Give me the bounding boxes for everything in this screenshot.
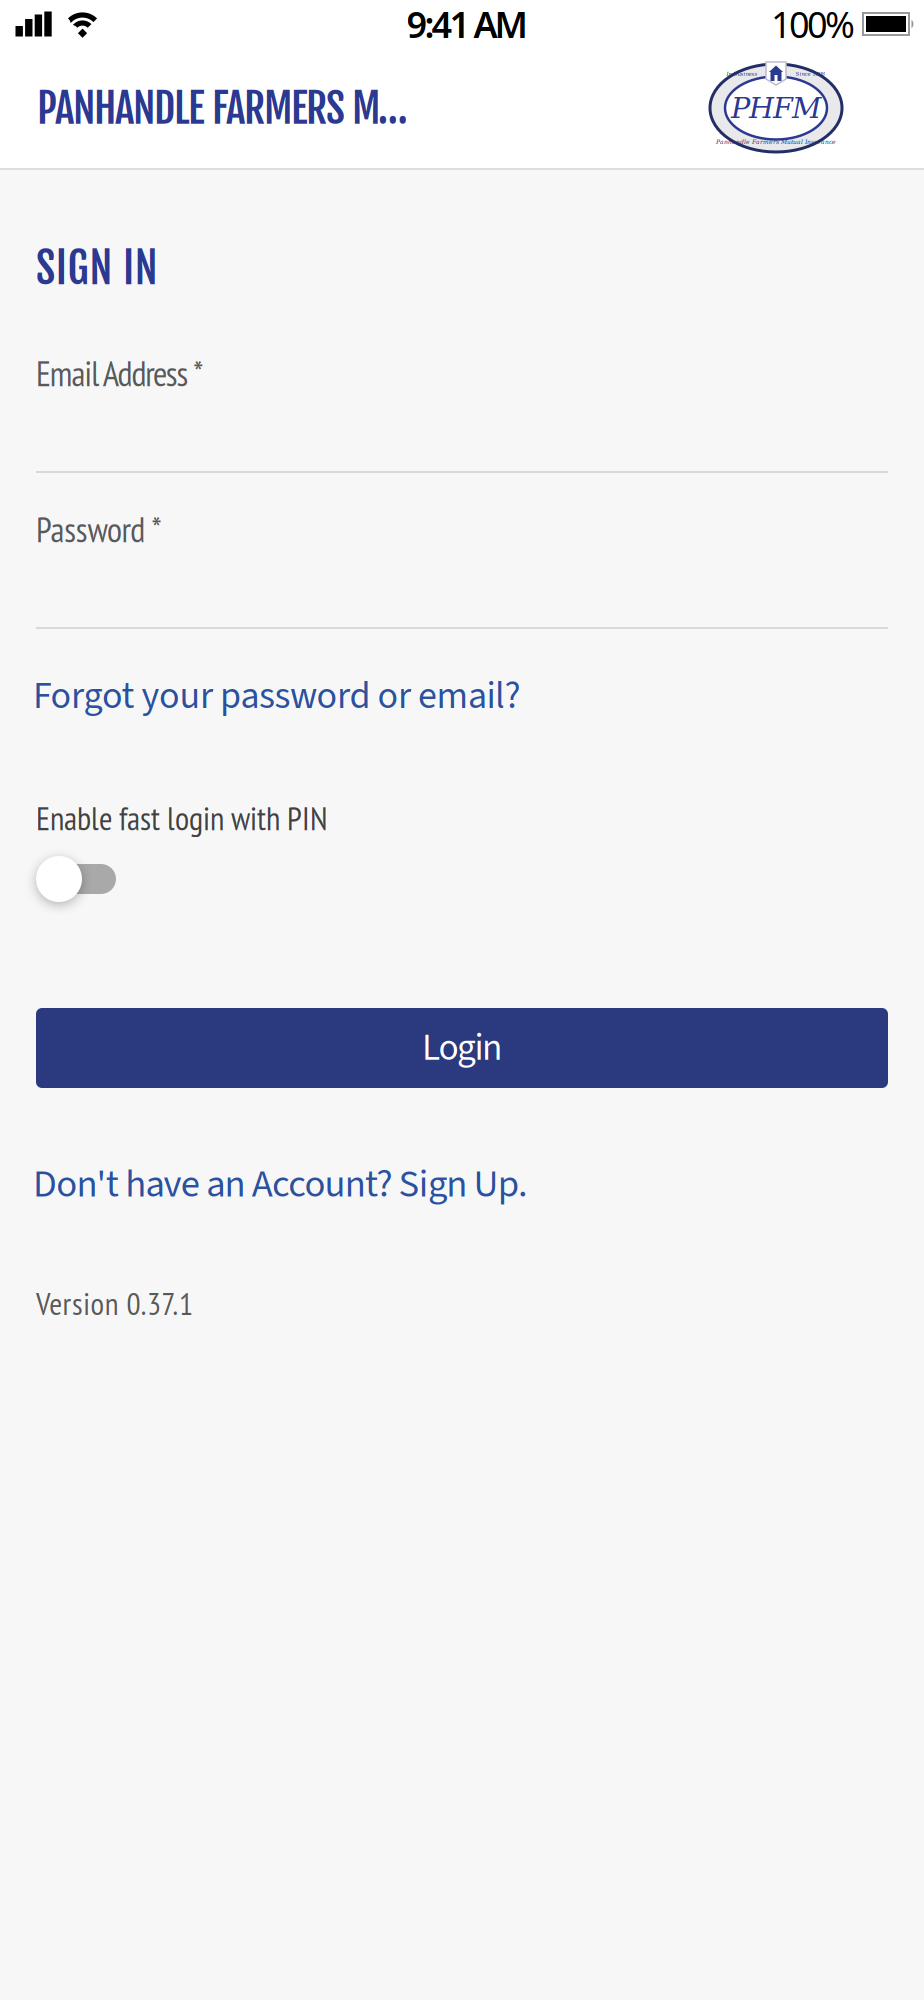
staticText: In Business: [726, 71, 757, 77]
staticText: Password *: [36, 507, 161, 552]
button[interactable]: Forgot your password or email?: [33, 669, 520, 723]
staticText: Since 1898: [795, 71, 824, 77]
staticText: PANHANDLE FARMERS M…: [37, 82, 408, 134]
staticText: 9:41 AM: [406, 0, 527, 48]
staticText: Login: [422, 1021, 502, 1075]
button[interactable]: Login: [36, 1008, 888, 1088]
staticText: PHFM: [731, 91, 821, 125]
button[interactable]: Email Address: [36, 351, 888, 473]
staticText: SIGN IN: [36, 242, 158, 295]
button[interactable]: Enable fast login with PIN: [36, 856, 122, 902]
staticText: Don't have an Account? Sign Up.: [33, 1157, 528, 1212]
staticText: Enable fast login with PIN: [36, 797, 328, 839]
staticText: Panhandle Farmers Mutual Insurance: [716, 138, 836, 145]
staticText: 100%: [771, 0, 855, 48]
button[interactable]: Password: [36, 507, 888, 629]
button[interactable]: Don't have an Account? Sign Up.: [33, 1157, 528, 1212]
staticText: Forgot your password or email?: [33, 669, 520, 723]
staticText: Email Address *: [36, 351, 203, 396]
staticText: Version 0.37.1: [36, 1283, 193, 1323]
